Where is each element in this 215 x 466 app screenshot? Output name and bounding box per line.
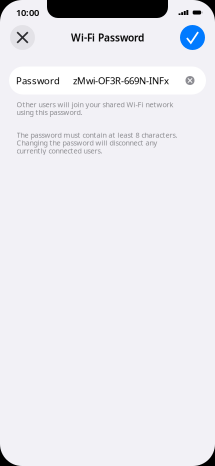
button[interactable]: Close — [10, 25, 35, 50]
staticText: 10:00 — [16, 6, 39, 19]
staticText: Other users will join your shared Wi-Fi … — [16, 99, 173, 117]
button[interactable]: Clear text — [183, 74, 196, 87]
staticText: zMwi-OF3R-669N-INFx — [73, 74, 169, 87]
staticText: The password must contain at least 8 cha… — [16, 130, 177, 155]
button[interactable]: Done — [180, 25, 205, 50]
staticText: Wi-Fi Password — [71, 31, 144, 44]
staticText: Password — [16, 74, 60, 87]
